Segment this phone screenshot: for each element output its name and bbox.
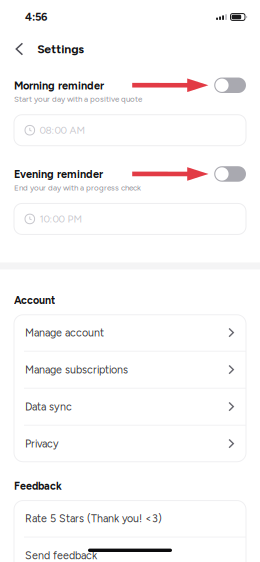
staticText: Feedback — [14, 480, 62, 492]
staticText: Manage subscriptions — [25, 363, 128, 376]
staticText: Manage account — [25, 326, 104, 339]
staticText: Settings — [37, 42, 84, 56]
button[interactable]: Data sync — [14, 389, 246, 425]
button[interactable]: Privacy — [14, 426, 246, 462]
staticText: Account — [14, 294, 55, 307]
staticText: 08:00 AM — [40, 124, 86, 136]
button[interactable]: Manage account — [14, 315, 246, 351]
button[interactable]: Manage subscriptions — [14, 352, 246, 388]
staticText: Send feedback — [25, 549, 97, 562]
staticText: Morning reminder — [14, 79, 104, 92]
button[interactable]: Send feedback — [14, 537, 246, 562]
button[interactable]: Evening reminder — [214, 166, 246, 182]
staticText: Rate 5 Stars (Thank you! <3) — [25, 512, 162, 525]
staticText: Privacy — [25, 437, 59, 450]
staticText: Evening reminder — [14, 168, 103, 181]
staticText: End your day with a progress check — [14, 183, 141, 192]
staticText: 10:00 PM — [40, 213, 83, 225]
staticText: Data sync — [25, 400, 72, 413]
staticText: 4:56 — [25, 10, 47, 24]
button[interactable]: Rate 5 Stars (Thank you! <3) — [14, 500, 246, 536]
staticText: Start your day with a positive quote — [14, 94, 142, 104]
button[interactable]: Morning reminder — [214, 77, 246, 93]
button[interactable]: Back — [8, 37, 30, 61]
